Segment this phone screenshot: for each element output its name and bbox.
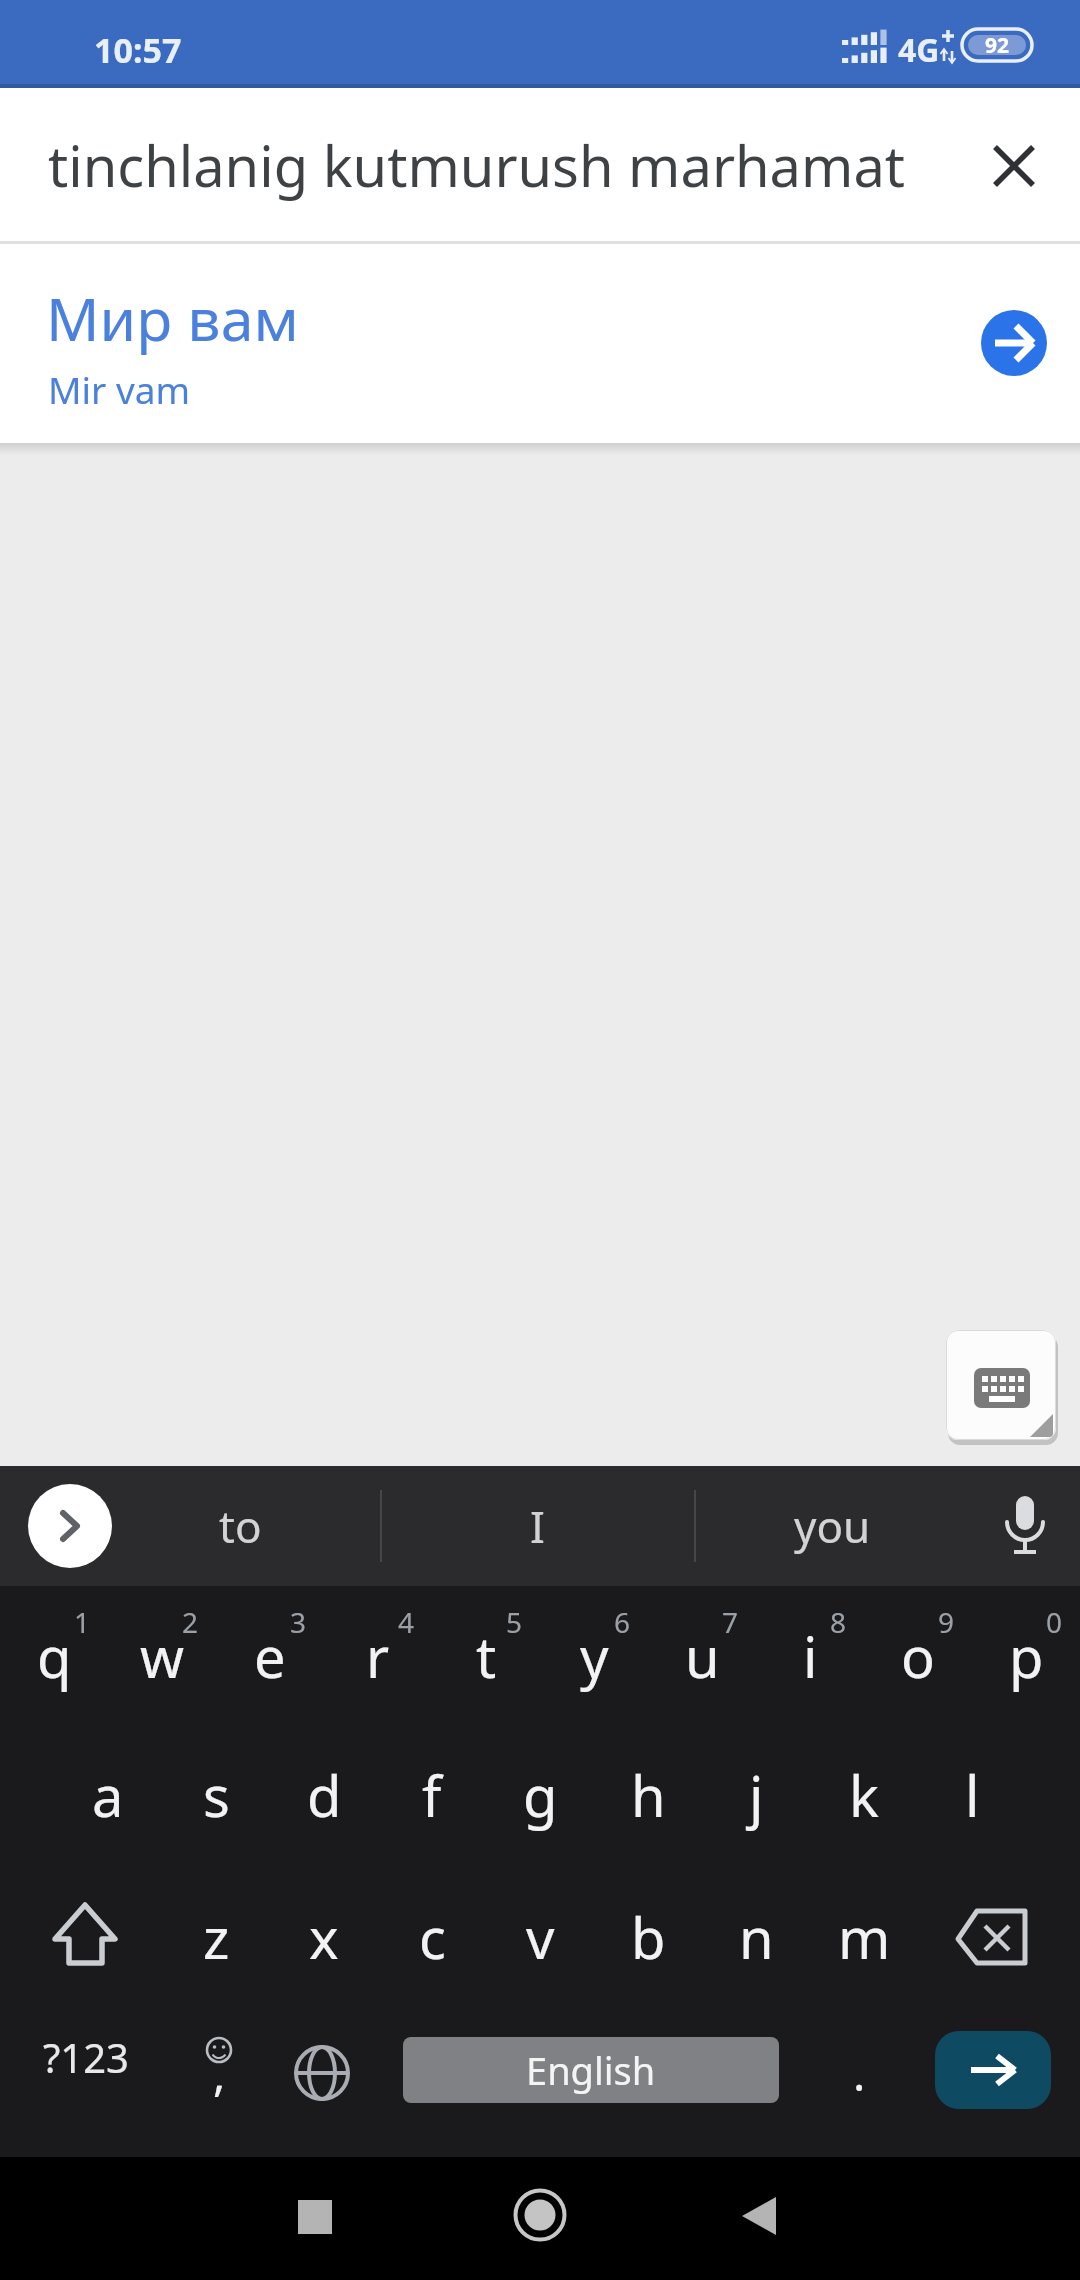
staticText: ,	[213, 2042, 226, 2105]
button[interactable]: d	[270, 1732, 378, 1858]
staticText: r	[366, 1618, 390, 1694]
button[interactable]: b	[594, 1874, 702, 2000]
button[interactable]	[997, 1494, 1053, 1558]
button[interactable]: f	[378, 1732, 486, 1858]
button[interactable]: tinchlanig kutmurush marhamat	[0, 88, 1080, 241]
button[interactable]: i	[756, 1592, 864, 1720]
staticText: Мир вам	[46, 278, 299, 358]
button[interactable]	[981, 310, 1047, 376]
staticText: 1	[74, 1603, 91, 1641]
staticText: 8	[830, 1603, 847, 1641]
staticText: you	[794, 1496, 871, 1556]
staticText: y	[580, 1618, 609, 1694]
button[interactable]: you	[742, 1466, 922, 1586]
button[interactable]: o	[864, 1592, 972, 1720]
staticText: m	[838, 1899, 891, 1975]
staticText: English	[526, 2044, 656, 2096]
button[interactable]	[513, 2188, 567, 2242]
staticText: j	[749, 1757, 764, 1833]
staticText: Mir vam	[48, 364, 191, 414]
button[interactable]: n	[702, 1874, 810, 2000]
staticText: 3	[290, 1603, 307, 1641]
staticText: f	[422, 1757, 442, 1833]
button[interactable]: v	[486, 1874, 594, 2000]
staticText: 4G	[898, 28, 940, 72]
staticText: a	[92, 1757, 124, 1833]
button[interactable]	[940, 1889, 1044, 1993]
button[interactable]: w	[108, 1592, 216, 1720]
button[interactable]: h	[594, 1732, 702, 1858]
button[interactable]: ?123	[26, 2012, 146, 2102]
button[interactable]: j	[702, 1732, 810, 1858]
staticText: d	[307, 1757, 342, 1833]
button[interactable]: to	[150, 1466, 330, 1586]
button[interactable]: x	[270, 1874, 378, 2000]
staticText: c	[419, 1899, 446, 1975]
button[interactable]	[935, 2031, 1051, 2109]
staticText: 92	[985, 31, 1010, 60]
button[interactable]: q	[0, 1592, 108, 1720]
button[interactable]	[28, 1484, 112, 1568]
staticText: .	[853, 2042, 866, 2105]
staticText: k	[849, 1757, 879, 1833]
staticText: g	[523, 1757, 558, 1833]
staticText: x	[309, 1899, 339, 1975]
button[interactable]: e	[216, 1592, 324, 1720]
staticText: 0	[1046, 1603, 1063, 1641]
button[interactable]: .	[830, 2028, 888, 2118]
staticText: l	[965, 1757, 980, 1833]
button[interactable]	[34, 1889, 130, 1985]
button[interactable]: y	[540, 1592, 648, 1720]
button[interactable]: u	[648, 1592, 756, 1720]
staticText: e	[254, 1618, 286, 1694]
staticText: 5	[506, 1603, 523, 1641]
staticText: I	[530, 1496, 545, 1556]
button[interactable]	[180, 2012, 258, 2112]
staticText: 7	[722, 1603, 739, 1641]
button[interactable]: k	[810, 1732, 918, 1858]
button[interactable]	[981, 133, 1047, 199]
staticText: n	[739, 1899, 774, 1975]
staticText: ?123	[43, 2030, 129, 2084]
staticText: h	[631, 1757, 666, 1833]
staticText: u	[685, 1618, 720, 1694]
staticText: 6	[614, 1603, 631, 1641]
button[interactable]: c	[378, 1874, 486, 2000]
button[interactable]: English	[403, 2037, 779, 2103]
staticText: p	[1009, 1618, 1044, 1694]
staticText: s	[203, 1757, 230, 1833]
staticText: t	[476, 1618, 497, 1694]
staticText: 2	[182, 1603, 199, 1641]
button[interactable]: g	[486, 1732, 594, 1858]
staticText: to	[219, 1496, 262, 1556]
staticText: q	[37, 1618, 72, 1694]
staticText: 9	[938, 1603, 955, 1641]
button[interactable]: l	[918, 1732, 1026, 1858]
button[interactable]	[292, 2043, 352, 2103]
button[interactable]: s	[162, 1732, 270, 1858]
button[interactable]: m	[810, 1874, 918, 2000]
button[interactable]: I	[447, 1466, 627, 1586]
button[interactable]: r	[324, 1592, 432, 1720]
staticText: z	[203, 1899, 230, 1975]
staticText: w	[140, 1618, 185, 1694]
button[interactable]: t	[432, 1592, 540, 1720]
button[interactable]: a	[54, 1732, 162, 1858]
staticText: 10:57	[94, 27, 182, 73]
button[interactable]: p	[972, 1592, 1080, 1720]
staticText: tinchlanig kutmurush marhamat	[48, 127, 906, 203]
staticText: o	[901, 1618, 935, 1694]
button[interactable]	[742, 2197, 778, 2235]
staticText: v	[526, 1899, 555, 1975]
button[interactable]: z	[162, 1874, 270, 2000]
staticText: b	[631, 1899, 666, 1975]
button[interactable]	[946, 1330, 1056, 1440]
staticText: 4	[398, 1603, 415, 1641]
staticText: i	[803, 1618, 818, 1694]
